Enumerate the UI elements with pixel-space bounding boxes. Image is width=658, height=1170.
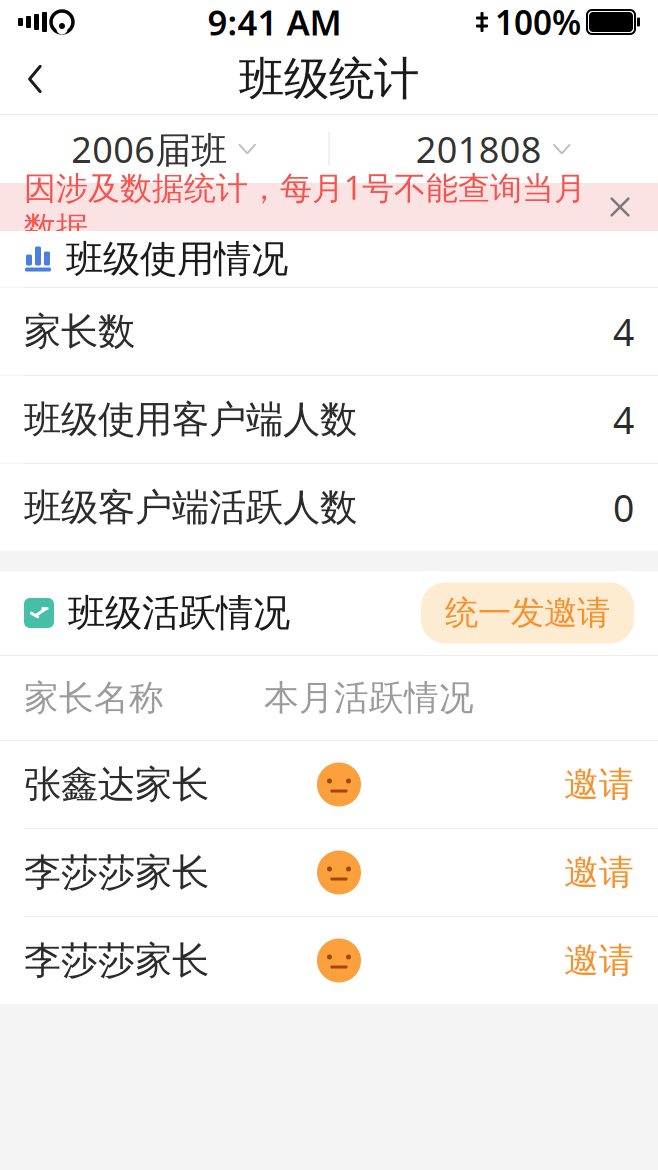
button[interactable]: 张鑫达家长 xyxy=(0,741,658,829)
button[interactable]: 201808 xyxy=(329,115,658,183)
staticText: 本月活跃情况 xyxy=(264,677,474,719)
staticText: 张鑫达家长 xyxy=(24,762,209,807)
staticText: 邀请 xyxy=(564,939,634,982)
staticText: 201808 xyxy=(416,125,542,173)
staticText: 4 xyxy=(613,307,634,356)
staticText: 因涉及数据统计，每月1号不能查询当月数据 xyxy=(24,166,586,248)
staticText: 邀请 xyxy=(564,851,634,894)
staticText: 4 xyxy=(613,395,634,444)
button[interactable]: 家长数 xyxy=(0,288,658,375)
button[interactable]: 班级客户端活跃人数 xyxy=(0,464,658,551)
button[interactable]: 统一发邀请 xyxy=(421,582,634,643)
staticText: 班级使用客户端人数 xyxy=(24,397,357,442)
staticText: 李莎莎家长 xyxy=(24,850,209,895)
staticText: 0 xyxy=(613,483,634,532)
staticText: 班级客户端活跃人数 xyxy=(24,485,357,530)
staticText: 班级使用情况 xyxy=(66,236,288,282)
staticText: 家长数 xyxy=(24,309,135,354)
staticText: 统一发邀请 xyxy=(445,592,610,633)
staticText: 家长名称 xyxy=(24,677,164,719)
button[interactable]: 李莎莎家长 xyxy=(0,829,658,917)
button[interactable]: Back xyxy=(0,44,70,114)
button[interactable]: 班级使用客户端人数 xyxy=(0,376,658,463)
staticText: 2006届班 xyxy=(71,125,227,173)
staticText: 100% xyxy=(495,0,581,44)
button[interactable]: 李莎莎家长 xyxy=(0,917,658,1004)
button[interactable]: Close xyxy=(596,183,644,231)
staticText: 李莎莎家长 xyxy=(24,938,209,983)
staticText: 班级统计 xyxy=(239,51,419,107)
staticText: 9:41 AM xyxy=(207,0,341,45)
staticText: 邀请 xyxy=(564,763,634,806)
staticText: 班级活跃情况 xyxy=(68,590,290,636)
button[interactable]: 2006届班 xyxy=(0,115,328,183)
